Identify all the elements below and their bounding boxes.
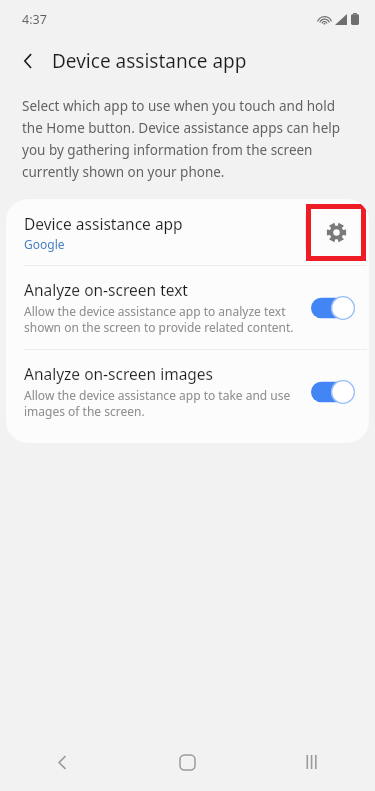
staticText: Analyze on-screen images bbox=[24, 363, 214, 384]
staticText: Allow the device assistance app to analy… bbox=[24, 303, 297, 336]
button[interactable]: Analyze on-screen images bbox=[6, 350, 369, 433]
button[interactable]: Back bbox=[0, 733, 125, 791]
staticText: Allow the device assistance app to take … bbox=[24, 387, 297, 420]
button[interactable]: Back bbox=[10, 43, 46, 79]
button[interactable]: Device assistance app bbox=[6, 199, 369, 265]
button[interactable]: Toggle bbox=[311, 296, 355, 320]
button[interactable]: Home bbox=[125, 733, 250, 791]
staticText: Device assistance app bbox=[52, 48, 247, 74]
button[interactable]: Toggle bbox=[311, 380, 355, 404]
staticText: Analyze on-screen text bbox=[24, 279, 188, 300]
staticText: Google bbox=[24, 236, 65, 252]
staticText: Select which app to use when you touch a… bbox=[22, 97, 353, 181]
button[interactable]: Analyze on-screen text bbox=[6, 266, 369, 349]
button[interactable]: Recent apps bbox=[250, 733, 375, 791]
button[interactable]: Settings bbox=[306, 204, 366, 261]
staticText: 4:37 bbox=[22, 11, 47, 28]
staticText: Device assistance app bbox=[24, 213, 183, 234]
